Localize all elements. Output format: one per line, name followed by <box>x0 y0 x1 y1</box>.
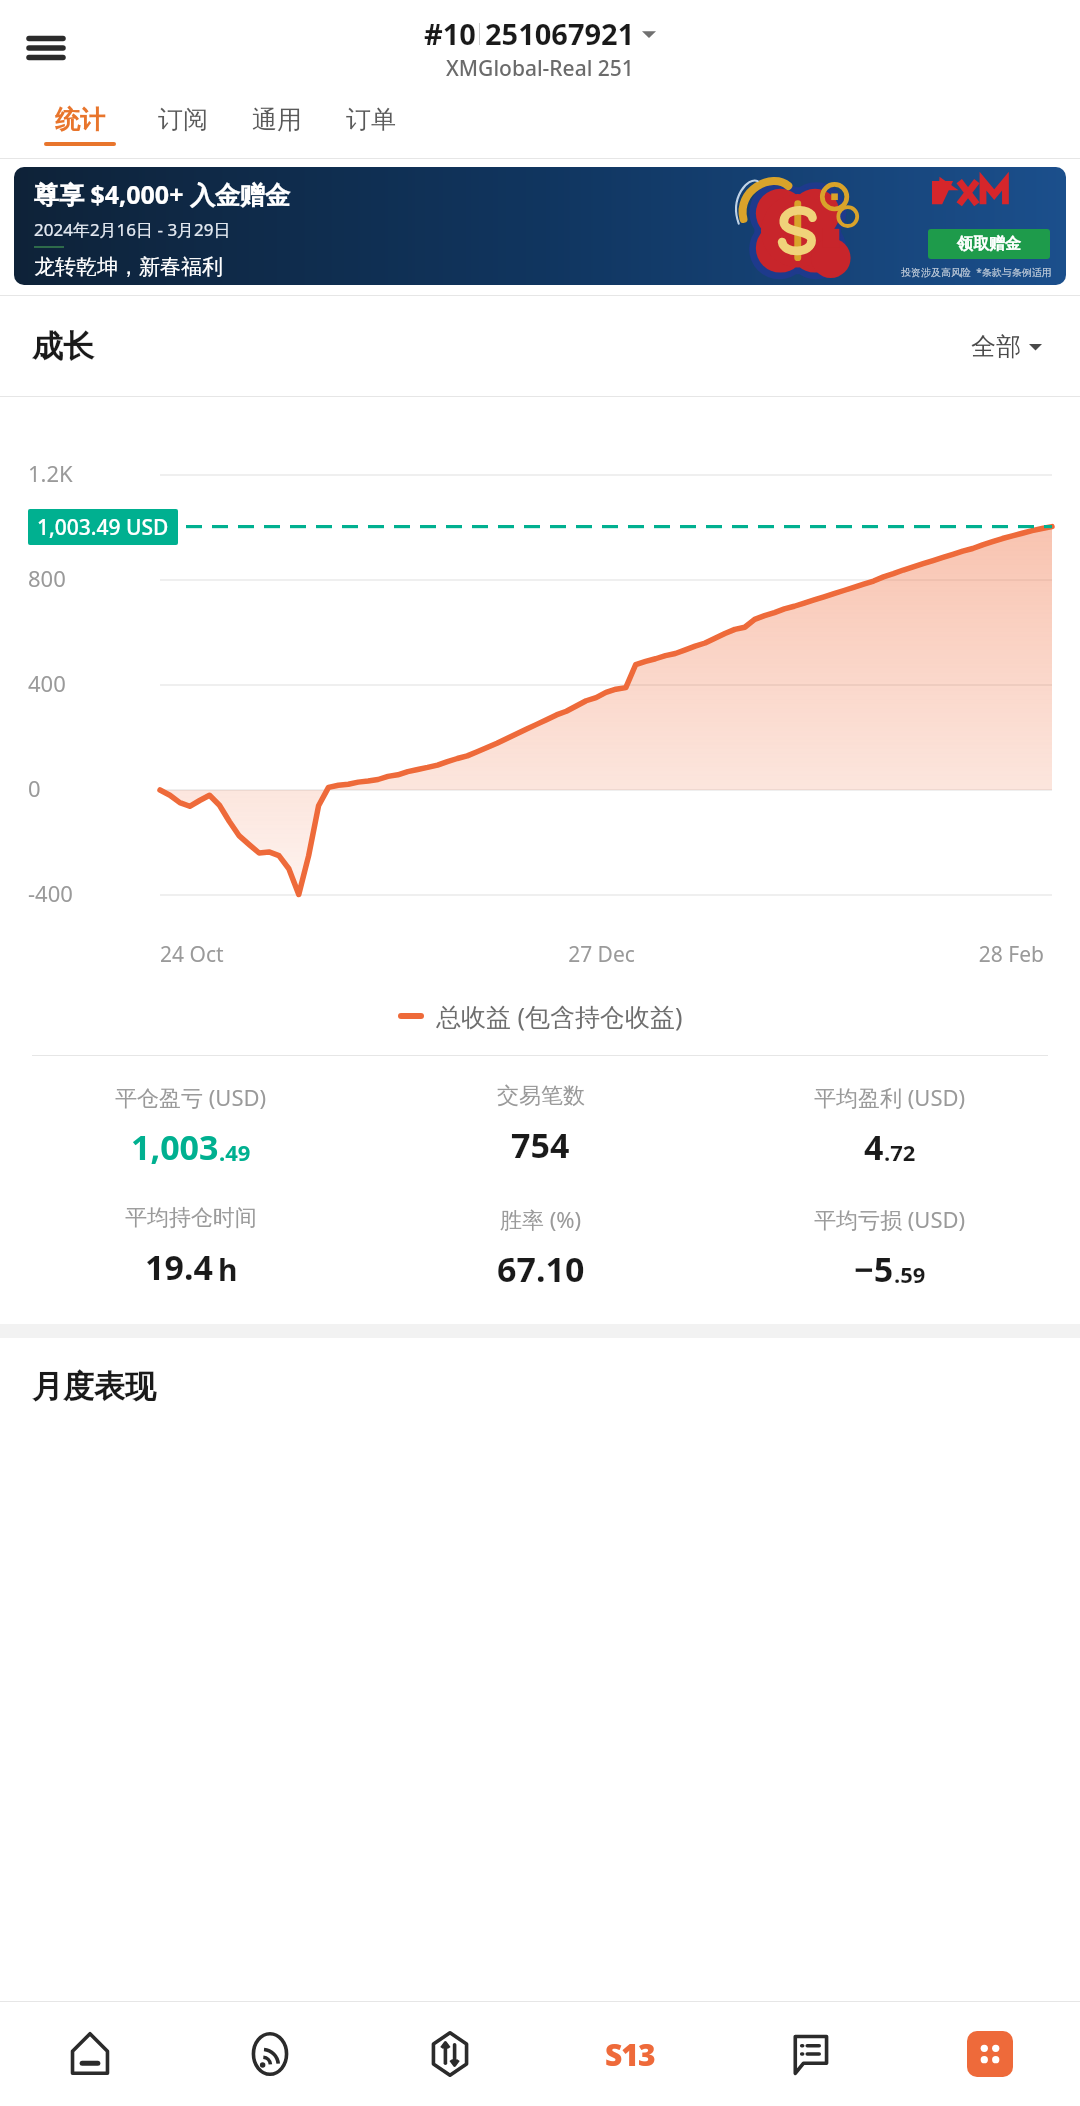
staticText: 投资涉及高风险 *条款与条例适用 <box>901 265 1052 279</box>
button[interactable]: 订单 <box>324 96 418 158</box>
button[interactable]: 平均持仓时间 <box>16 1204 366 1290</box>
button[interactable]: 平仓盈亏 (USD) <box>16 1082 366 1170</box>
staticText: 订单 <box>346 104 396 135</box>
staticText: 交易笔数 <box>497 1082 585 1110</box>
button[interactable]: 尊享 $4,000+ 入金赠金 <box>14 167 1066 285</box>
staticText: 1,003 <box>131 1124 219 1170</box>
staticText: 尊享 $4,000+ 入金赠金 <box>34 177 290 211</box>
staticText: 平仓盈亏 (USD) <box>115 1082 267 1112</box>
staticText: 平均盈利 (USD) <box>814 1082 966 1112</box>
button[interactable]: Messages <box>720 2002 900 2106</box>
button[interactable]: 交易笔数 <box>366 1082 715 1168</box>
button[interactable]: 领取赠金 <box>928 229 1050 259</box>
staticText: 28 Feb <box>749 940 1044 969</box>
button[interactable]: 平均亏损 (USD) <box>715 1204 1064 1292</box>
staticText: -400 <box>28 878 73 908</box>
staticText: .59 <box>894 1259 926 1289</box>
button[interactable]: 订阅 <box>136 96 230 158</box>
staticText: S13 <box>605 2034 655 2075</box>
staticText: 4 <box>864 1124 884 1170</box>
button[interactable]: 全部 <box>965 325 1048 368</box>
staticText: 251067921 <box>485 14 635 53</box>
staticText: 1.2K <box>28 458 73 488</box>
staticText: 平均持仓时间 <box>125 1204 257 1232</box>
button[interactable]: Menu <box>14 16 78 80</box>
staticText: 总收益 (包含持仓收益) <box>436 999 683 1033</box>
staticText: 统计 <box>55 104 105 135</box>
staticText: 1,003.49 USD <box>37 513 169 542</box>
staticText: 67.10 <box>497 1246 585 1292</box>
button[interactable]: #10 <box>424 14 656 53</box>
button[interactable]: More <box>900 2002 1080 2106</box>
staticText: 订阅 <box>158 104 208 135</box>
staticText: 龙转乾坤，新春福利 <box>34 254 223 280</box>
staticText: −5 <box>854 1246 894 1292</box>
staticText: 2024年2月16日 - 3月29日 <box>34 218 231 241</box>
staticText: 成长 <box>32 327 94 366</box>
staticText: #10 <box>424 14 476 53</box>
staticText: 19.4 <box>145 1244 213 1290</box>
staticText: .49 <box>219 1137 251 1167</box>
staticText: 754 <box>511 1122 570 1168</box>
staticText: 平均亏损 (USD) <box>814 1204 966 1234</box>
button[interactable]: Trade <box>360 2002 540 2106</box>
button[interactable]: Home <box>0 2002 180 2106</box>
button[interactable]: 统计 <box>24 96 136 158</box>
staticText: 通用 <box>252 104 302 135</box>
staticText: 27 Dec <box>454 940 749 969</box>
button[interactable]: 胜率 (%) <box>366 1204 715 1292</box>
staticText: XMGlobal-Real 251 <box>446 54 634 83</box>
staticText: .72 <box>884 1137 916 1167</box>
staticText: 400 <box>28 668 66 698</box>
staticText: 全部 <box>971 331 1021 362</box>
button[interactable]: 平均盈利 (USD) <box>715 1082 1064 1170</box>
staticText: 24 Oct <box>160 940 454 969</box>
staticText: 胜率 (%) <box>500 1204 582 1234</box>
staticText: h <box>218 1249 238 1290</box>
staticText: 800 <box>28 563 66 593</box>
button[interactable]: Signals <box>180 2002 360 2106</box>
button[interactable]: 通用 <box>230 96 324 158</box>
staticText: 0 <box>28 773 41 803</box>
staticText: 月度表现 <box>32 1367 156 1406</box>
button[interactable]: S13 <box>540 2002 720 2106</box>
staticText: 领取赠金 <box>957 234 1021 254</box>
